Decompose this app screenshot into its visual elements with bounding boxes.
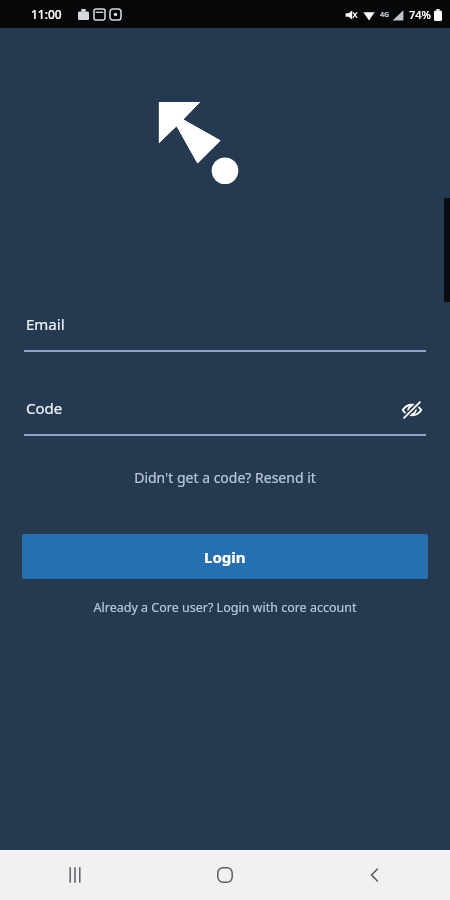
button[interactable]: Code bbox=[24, 398, 426, 436]
button[interactable]: Already a Core user? Login with core acc… bbox=[20, 595, 430, 619]
staticText: Didn't get a code? Resend it bbox=[30, 468, 420, 487]
staticText: 11:00 bbox=[31, 6, 62, 22]
staticText: Code bbox=[26, 398, 63, 418]
staticText: Login bbox=[204, 547, 246, 567]
button[interactable]: Login bbox=[22, 534, 428, 579]
staticText: 4G bbox=[380, 10, 390, 20]
button[interactable]: Didn't get a code? Resend it bbox=[30, 464, 420, 490]
staticText: Email bbox=[26, 314, 65, 334]
button[interactable]: Email bbox=[24, 314, 426, 352]
staticText: Already a Core user? Login with core acc… bbox=[20, 599, 430, 616]
button[interactable]: Back bbox=[300, 850, 450, 900]
button[interactable]: Home bbox=[150, 850, 300, 900]
staticText: 74% bbox=[409, 7, 431, 22]
button[interactable]: Recent apps bbox=[0, 850, 150, 900]
button[interactable]: Show code bbox=[398, 396, 426, 424]
